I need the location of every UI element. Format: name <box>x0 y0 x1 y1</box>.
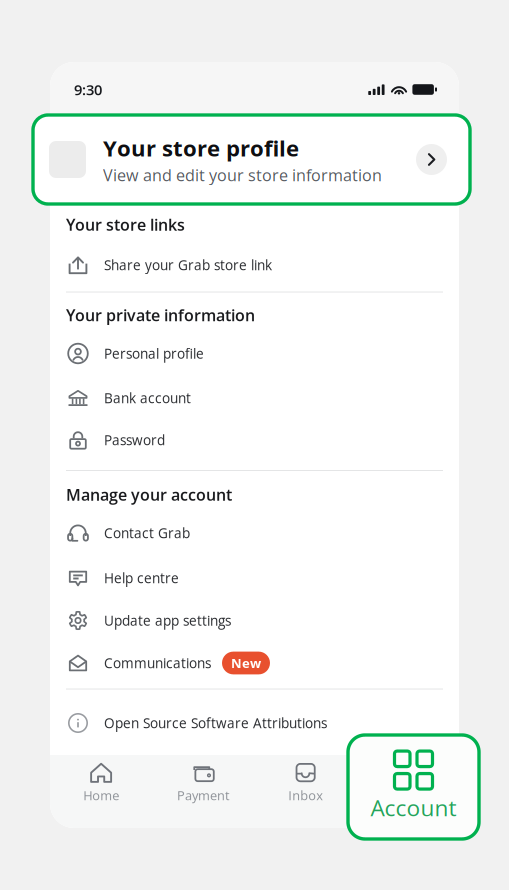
staticText: Open Source Software Attributions <box>104 714 327 732</box>
staticText: Payment <box>177 787 230 804</box>
staticText: View and edit your store information <box>103 164 382 186</box>
staticText: 9:30 <box>74 79 102 99</box>
button[interactable]: Your store profile <box>33 115 470 204</box>
button[interactable]: Communications <box>50 642 459 684</box>
staticText: Home <box>83 787 119 804</box>
button[interactable]: Inbox <box>254 755 357 828</box>
staticText: Bank account <box>104 389 191 407</box>
staticText: New <box>231 654 261 672</box>
staticText: Account <box>370 792 456 823</box>
button[interactable]: Contact Grab <box>50 509 459 557</box>
button[interactable]: Home <box>50 755 152 828</box>
button[interactable]: Account <box>357 755 459 828</box>
staticText: Help centre <box>104 569 179 587</box>
staticText: Communications <box>104 654 211 672</box>
staticText: Password <box>104 431 165 449</box>
staticText: Inbox <box>288 787 323 804</box>
staticText: Manage your account <box>66 484 232 505</box>
staticText: Account <box>383 787 432 804</box>
button[interactable]: Account <box>348 735 479 839</box>
button[interactable]: Help centre <box>50 557 459 599</box>
staticText: Your store links <box>66 214 185 235</box>
staticText: Personal profile <box>104 344 204 363</box>
staticText: Contact Grab <box>104 524 190 542</box>
button[interactable]: Open Source Software Attributions <box>50 694 459 752</box>
staticText: Your store profile <box>103 133 299 163</box>
staticText: Your private information <box>66 304 255 326</box>
button[interactable]: Personal profile <box>50 330 459 377</box>
button[interactable]: Bank account <box>50 377 459 419</box>
staticText: Share your Grab store link <box>104 256 272 274</box>
button[interactable]: Password <box>50 419 459 461</box>
button[interactable]: Share your Grab store link <box>50 246 459 284</box>
staticText: Update app settings <box>104 611 231 630</box>
button[interactable]: Update app settings <box>50 599 459 642</box>
button[interactable]: Payment <box>152 755 254 828</box>
